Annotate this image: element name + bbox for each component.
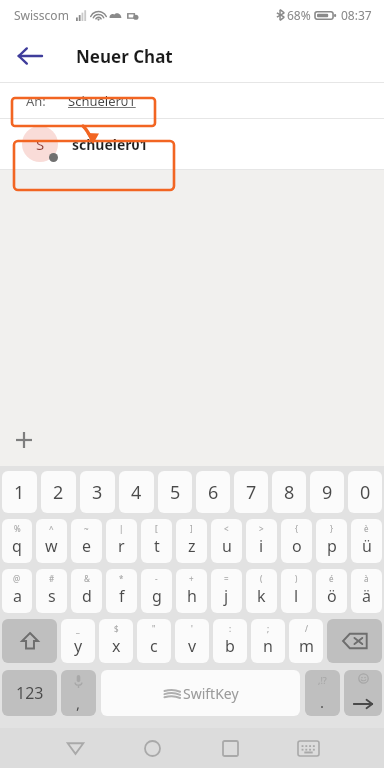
button[interactable]: 2 [41,471,76,513]
staticText: S [36,134,45,154]
staticText: & [84,573,90,584]
staticText: - [155,573,158,584]
staticText: 1 [14,480,25,505]
button[interactable]: à [351,569,382,613]
button[interactable]: < [211,519,242,563]
button[interactable]: # [36,569,67,613]
staticText: t [154,535,160,557]
button[interactable]: Space [101,670,300,716]
button[interactable]: ^ [36,519,67,563]
staticText: Swisscom [14,7,69,23]
button[interactable]: - [141,569,172,613]
staticText: / [305,623,308,634]
button[interactable]: * [106,569,137,613]
button[interactable]: Backspace [327,619,382,663]
staticText: ' [191,623,193,634]
staticText: 4 [131,480,142,505]
button[interactable]: Symbols [305,670,340,716]
staticText: 08:37 [341,7,372,23]
staticText: 0 [360,480,371,505]
button[interactable]: S [0,119,384,169]
staticText: } [330,523,334,534]
button[interactable]: 9 [310,471,344,513]
button[interactable]: ( [246,569,277,613]
staticText: " [152,623,156,634]
staticText: b [225,635,235,657]
staticText: . [320,692,325,712]
button[interactable]: Home [135,731,169,765]
staticText: = [224,573,229,584]
button[interactable]: | [106,519,137,563]
staticText: # [49,573,55,584]
button[interactable]: é [316,569,347,613]
button[interactable]: 3 [80,471,115,513]
button[interactable]: Enter [344,670,382,716]
staticText: ] [190,523,193,534]
staticText: z [188,535,196,557]
staticText: m [299,635,314,657]
staticText: à [364,573,369,584]
button[interactable]: 5 [158,471,192,513]
staticText: a [13,585,22,607]
staticText: 3 [92,480,103,505]
button[interactable]: Back [10,36,50,76]
button[interactable]: / [289,619,323,663]
staticText: 9 [322,480,333,505]
staticText: q [12,535,22,557]
button[interactable]: An: [0,83,384,118]
button[interactable]: ; [251,619,285,663]
button[interactable]: Attach [10,426,38,454]
button[interactable]: Voice input [61,670,96,716]
staticText: i [259,535,264,557]
button[interactable]: % [2,519,32,563]
button[interactable]: [ [141,519,172,563]
staticText: c [150,635,158,657]
button[interactable]: ) [281,569,312,613]
button[interactable]: Back [58,731,92,765]
button[interactable]: 8 [272,471,306,513]
button[interactable]: Hide keyboard [291,731,325,765]
staticText: w [45,535,58,557]
button[interactable]: 123 [2,670,57,716]
staticText: 5 [170,480,181,505]
staticText: ( [260,573,263,584]
button[interactable]: 6 [196,471,230,513]
staticText: l [294,585,299,607]
staticText: % [14,523,21,534]
button[interactable]: 4 [119,471,154,513]
button[interactable]: : [213,619,247,663]
button[interactable]: 7 [234,471,268,513]
staticText: x [112,635,121,657]
staticText: ä [362,585,371,607]
button[interactable]: ~ [71,519,102,563]
button[interactable]: ' [175,619,209,663]
button[interactable]: = [211,569,242,613]
staticText: Schueler01 [68,92,136,110]
staticText: * [119,573,124,584]
button[interactable]: Shift [2,619,57,663]
staticText: d [82,585,92,607]
button[interactable]: " [137,619,171,663]
button[interactable]: ] [176,519,207,563]
staticText: schueler01 [72,135,148,154]
staticText: ^ [49,523,54,534]
staticText: _ [76,623,80,634]
button[interactable]: @ [2,569,32,613]
button[interactable]: è [351,519,382,563]
button[interactable]: { [281,519,312,563]
button[interactable]: + [176,569,207,613]
button[interactable]: & [71,569,102,613]
staticText: s [48,585,56,607]
button[interactable]: > [246,519,277,563]
button[interactable]: Recents [213,731,247,765]
button[interactable]: _ [61,619,95,663]
button[interactable]: 0 [348,471,382,513]
button[interactable]: $ [99,619,133,663]
staticText: $ [114,623,119,634]
staticText: è [364,523,369,534]
staticText: 123 [16,682,44,704]
staticText: y [74,635,83,657]
button[interactable]: } [316,519,347,563]
button[interactable]: 1 [2,471,37,513]
staticText: 7 [246,480,257,505]
